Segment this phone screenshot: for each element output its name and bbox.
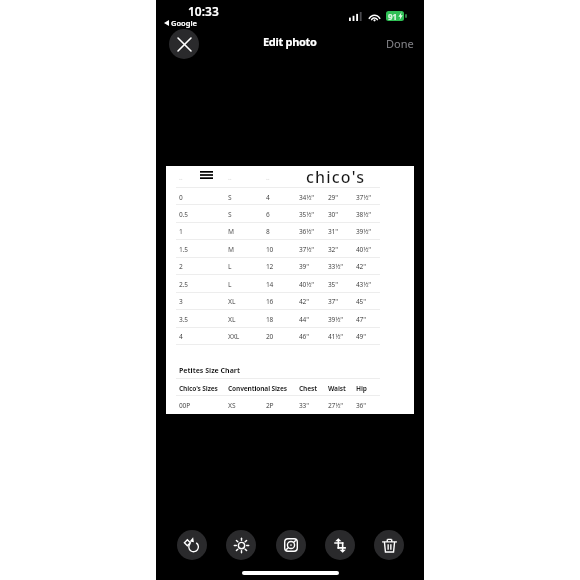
staticText: 12: [266, 262, 274, 271]
staticText: 00P: [179, 401, 191, 410]
staticText: M: [228, 245, 234, 254]
staticText: Done: [386, 36, 414, 51]
button[interactable]: Done: [374, 32, 424, 55]
staticText: 39½": [328, 315, 344, 324]
staticText: M: [228, 227, 234, 236]
staticText: Chest: [299, 384, 317, 393]
staticText: 31": [328, 227, 338, 236]
staticText: Chico's Sizes: [179, 384, 218, 393]
staticText: Edit photo: [263, 34, 317, 49]
button[interactable]: Brightness: [226, 530, 256, 560]
staticText: 43½": [356, 280, 372, 289]
staticText: 3: [179, 297, 183, 306]
staticText: ..: [266, 173, 270, 182]
staticText: ..: [179, 173, 183, 182]
staticText: 37½": [356, 193, 372, 202]
staticText: 30": [328, 210, 338, 219]
staticText: 29": [328, 193, 338, 202]
staticText: 42": [356, 262, 366, 271]
button[interactable]: Markup: [276, 530, 306, 560]
staticText: 35½": [299, 210, 315, 219]
staticText: 41½": [328, 332, 344, 341]
staticText: S: [228, 210, 232, 219]
button[interactable]: Delete: [374, 530, 404, 560]
staticText: 40½": [299, 280, 315, 289]
staticText: 0: [179, 193, 183, 202]
staticText: 27½": [328, 401, 344, 410]
staticText: Hip: [356, 384, 367, 393]
staticText: XL: [228, 315, 236, 324]
staticText: 18: [266, 315, 274, 324]
staticText: 2.5: [179, 280, 188, 289]
staticText: 10: [266, 245, 274, 254]
staticText: 91: [388, 11, 398, 21]
staticText: 42": [299, 297, 309, 306]
staticText: 39": [299, 262, 309, 271]
staticText: 6: [266, 210, 270, 219]
staticText: 2: [179, 262, 183, 271]
staticText: 16: [266, 297, 274, 306]
staticText: S: [228, 193, 232, 202]
staticText: 49": [356, 332, 366, 341]
staticText: ..: [228, 173, 232, 182]
staticText: Waist: [328, 384, 346, 393]
staticText: 44": [299, 315, 309, 324]
staticText: 37½": [299, 245, 315, 254]
staticText: 36": [356, 401, 366, 410]
staticText: Petites Size Chart: [179, 366, 241, 376]
staticText: 1.5: [179, 245, 188, 254]
staticText: 35": [328, 280, 338, 289]
staticText: 47": [356, 315, 366, 324]
staticText: 10:33: [188, 3, 219, 19]
staticText: 3.5: [179, 315, 188, 324]
staticText: Conventional Sizes: [228, 384, 287, 393]
staticText: 8: [266, 227, 270, 236]
staticText: Google: [171, 18, 197, 28]
staticText: 14: [266, 280, 274, 289]
staticText: XXL: [228, 332, 240, 341]
staticText: 40½": [356, 245, 372, 254]
staticText: 2P: [266, 401, 274, 410]
staticText: 32": [328, 245, 338, 254]
staticText: XL: [228, 297, 236, 306]
staticText: 20: [266, 332, 274, 341]
staticText: 38½": [356, 210, 372, 219]
staticText: 45": [356, 297, 366, 306]
staticText: 39½": [356, 227, 372, 236]
staticText: 1: [179, 227, 183, 236]
button[interactable]: Rotate: [177, 530, 207, 560]
staticText: 37": [328, 297, 338, 306]
staticText: 4: [266, 193, 270, 202]
staticText: 0.5: [179, 210, 188, 219]
staticText: 46": [299, 332, 309, 341]
button[interactable]: Close: [169, 29, 199, 59]
staticText: chico's: [306, 166, 364, 188]
staticText: 36½": [299, 227, 315, 236]
staticText: 4: [179, 332, 183, 341]
staticText: XS: [228, 401, 236, 410]
staticText: 33½": [328, 262, 344, 271]
button[interactable]: Crop: [325, 530, 355, 560]
staticText: L: [228, 262, 232, 271]
staticText: 33": [299, 401, 309, 410]
staticText: 34½": [299, 193, 315, 202]
staticText: L: [228, 280, 232, 289]
